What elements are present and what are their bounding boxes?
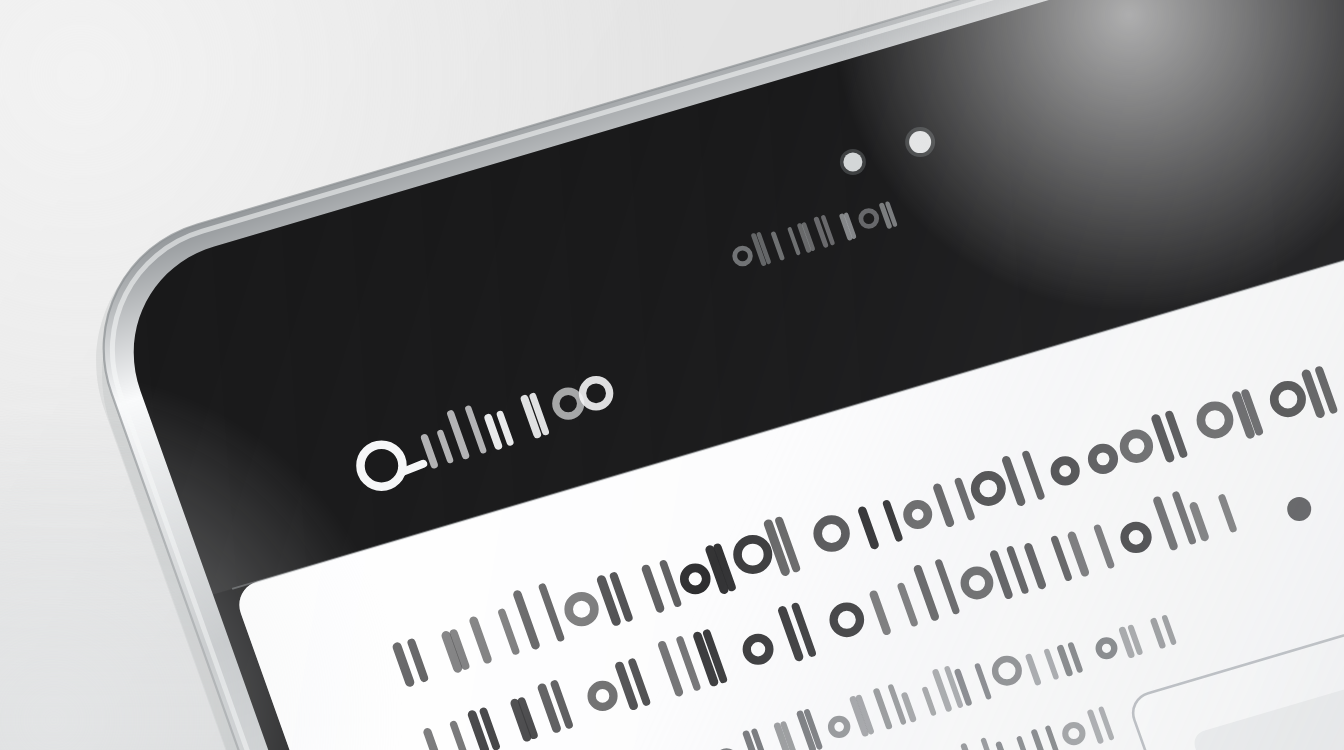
button[interactable]: Input field xyxy=(790,430,1260,660)
button[interactable]: Headline content xyxy=(230,300,1030,450)
button[interactable]: Details xyxy=(230,450,870,580)
button[interactable]: Status information xyxy=(860,88,1070,152)
button[interactable]: App bar, brand home xyxy=(60,170,580,290)
button[interactable]: Primary action xyxy=(740,480,1040,570)
